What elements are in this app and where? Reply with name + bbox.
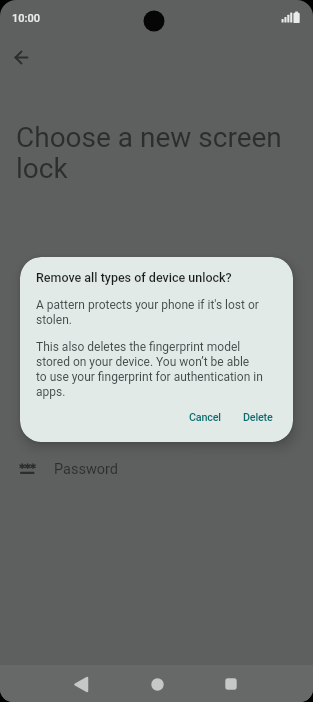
staticText: This also deletes the fingerprint model … — [36, 340, 263, 399]
staticText: lock — [16, 152, 68, 185]
button[interactable] — [6, 42, 37, 73]
staticText: Delete — [243, 411, 273, 424]
staticText: A pattern protects your phone if it's lo… — [36, 298, 259, 327]
button[interactable] — [66, 669, 96, 699]
staticText: Remove all types of device unlock? — [36, 270, 232, 285]
button[interactable]: Cancel — [185, 407, 225, 428]
staticText: Choose a new screen — [16, 121, 282, 154]
button[interactable] — [216, 669, 246, 699]
button[interactable]: Password — [0, 448, 313, 490]
staticText: Cancel — [189, 411, 221, 424]
button[interactable]: Delete — [239, 407, 277, 428]
staticText: 10:00 — [12, 12, 40, 25]
button[interactable] — [142, 669, 172, 699]
staticText: Password — [54, 461, 119, 478]
